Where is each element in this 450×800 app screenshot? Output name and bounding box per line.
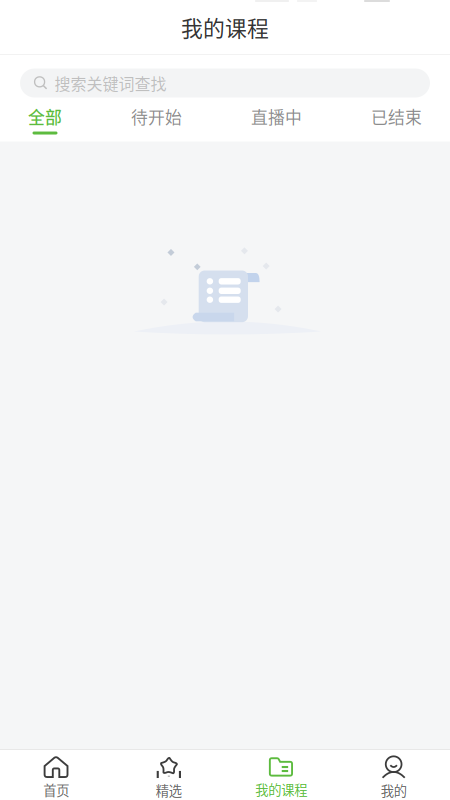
staticText: 直播中 <box>251 104 302 129</box>
button[interactable]: 我的课程 <box>225 750 337 800</box>
button[interactable]: 待开始 <box>131 105 182 134</box>
staticText: 我的课程 <box>255 780 307 799</box>
button[interactable]: 全部 <box>28 105 62 134</box>
staticText: 首页 <box>43 780 69 799</box>
button[interactable]: 已结束 <box>371 105 422 134</box>
button[interactable]: 首页 <box>0 750 112 800</box>
staticText: 我的 <box>381 781 407 800</box>
staticText: 已结束 <box>371 104 422 129</box>
staticText: 精选 <box>156 781 182 800</box>
button[interactable]: 直播中 <box>251 105 302 134</box>
staticText: 全部 <box>28 104 62 129</box>
staticText: 待开始 <box>131 104 182 129</box>
button[interactable]: 精选 <box>112 750 225 800</box>
button[interactable]: 我的 <box>337 750 450 800</box>
staticText: 我的课程 <box>181 11 269 43</box>
staticText: 搜索关键词查找 <box>54 71 166 95</box>
